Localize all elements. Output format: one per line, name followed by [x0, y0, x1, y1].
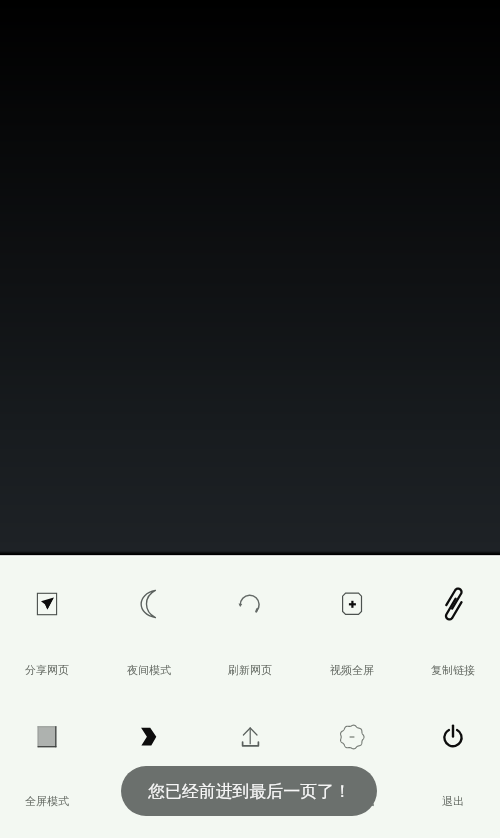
button[interactable]: Share page [0, 580, 94, 681]
other: Exit [406, 713, 500, 761]
button[interactable]: Night mode [102, 580, 196, 681]
staticText: 下一页 [133, 794, 166, 808]
staticText: 无图模式 [330, 794, 374, 808]
button[interactable]: Next page [102, 713, 196, 812]
other: Next page [102, 713, 196, 761]
staticText: 上传 [239, 794, 261, 808]
staticText: 全屏模式 [25, 794, 69, 808]
staticText: 退出 [442, 794, 464, 808]
other: Night mode [102, 580, 196, 628]
other: Copy link [406, 580, 500, 628]
staticText: 您已经前进到最后一页了！ [148, 781, 351, 802]
button[interactable]: Copy link [406, 580, 500, 681]
other: Refresh page [203, 580, 297, 628]
other: Full screen mode [0, 713, 94, 761]
other: Share page [0, 580, 94, 628]
staticText: 视频全屏 [330, 663, 374, 677]
other: Upload [203, 713, 297, 761]
staticText: 夜间模式 [127, 663, 171, 677]
staticText: 分享网页 [25, 663, 69, 677]
button[interactable]: No image mode [305, 713, 399, 812]
other: Video fullscreen [305, 580, 399, 628]
staticText: 复制链接 [431, 663, 475, 677]
button[interactable]: Video fullscreen [305, 580, 399, 681]
staticText: 刷新网页 [228, 663, 272, 677]
button[interactable]: Refresh page [203, 580, 297, 681]
button[interactable]: Exit [406, 713, 500, 812]
button[interactable]: Upload [203, 713, 297, 812]
other: No image mode [305, 713, 399, 761]
button[interactable]: Full screen mode [0, 713, 94, 812]
